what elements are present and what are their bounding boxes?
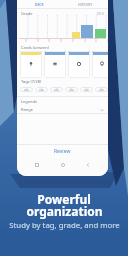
staticText: Grade bbox=[21, 11, 33, 16]
button[interactable]: Range bbox=[21, 107, 104, 112]
staticText: organization bbox=[26, 203, 103, 219]
button[interactable]: abc bbox=[80, 87, 93, 92]
staticText: Study by tag, grade, and more bbox=[9, 220, 120, 231]
staticText: 0 bbox=[37, 39, 39, 43]
staticText: abc bbox=[69, 88, 74, 92]
button[interactable]: abc bbox=[20, 87, 33, 92]
staticText: 0 bbox=[95, 39, 97, 43]
button[interactable] bbox=[68, 51, 90, 78]
staticText: Legends bbox=[21, 99, 37, 104]
staticText: 0 bbox=[72, 39, 74, 43]
staticText: 00.0 bbox=[97, 11, 104, 16]
staticText: 0 bbox=[107, 39, 108, 43]
button[interactable]: abc bbox=[95, 87, 108, 92]
button[interactable] bbox=[20, 51, 42, 78]
staticText: Powerful bbox=[37, 191, 91, 207]
staticText: 0 bbox=[84, 39, 86, 43]
other: Home bbox=[61, 163, 65, 167]
staticText: Tags (7/28) bbox=[21, 79, 42, 84]
button[interactable]: abc bbox=[50, 87, 63, 92]
staticText: Range bbox=[21, 107, 33, 112]
button[interactable]: Review bbox=[17, 145, 108, 158]
staticText: Review bbox=[54, 148, 71, 155]
staticText: abc bbox=[39, 88, 44, 92]
button[interactable]: abc bbox=[65, 87, 78, 92]
button[interactable]: HISTORY bbox=[62, 0, 108, 9]
staticText: HISTORY bbox=[78, 2, 93, 7]
other: Back bbox=[86, 163, 90, 167]
staticText: 0 bbox=[48, 39, 50, 43]
staticText: 0 bbox=[60, 39, 62, 43]
staticText: DECK bbox=[35, 2, 44, 7]
button[interactable]: abc bbox=[35, 87, 48, 92]
staticText: abc bbox=[54, 88, 59, 92]
button[interactable]: DECK bbox=[17, 0, 62, 9]
other: Recents bbox=[35, 163, 39, 167]
staticText: abc bbox=[84, 88, 89, 92]
staticText: abc bbox=[24, 88, 29, 92]
staticText: abc bbox=[99, 88, 104, 92]
button[interactable] bbox=[92, 51, 108, 78]
staticText: 0 bbox=[25, 39, 27, 43]
staticText: Cards (unseen) bbox=[21, 45, 50, 50]
button[interactable] bbox=[44, 51, 66, 78]
